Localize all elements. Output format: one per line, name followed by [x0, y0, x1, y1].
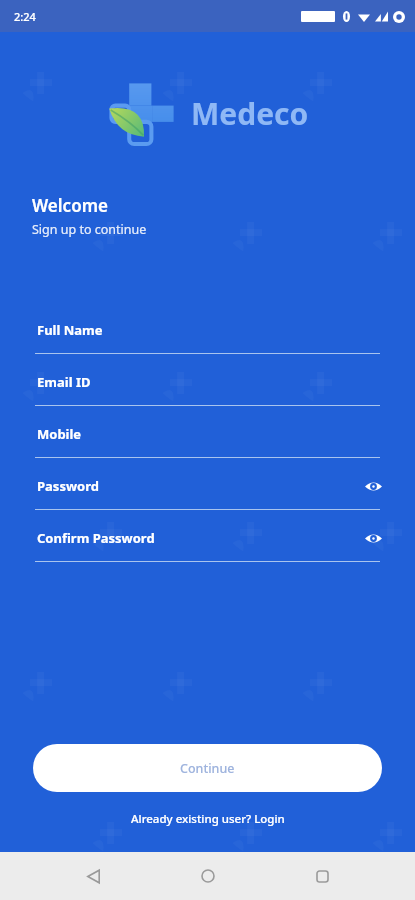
staticText: 2:24	[14, 9, 36, 24]
staticText: Password	[37, 477, 99, 495]
button[interactable]: Show password	[361, 474, 385, 498]
staticText: Welcome	[32, 194, 108, 217]
button[interactable]: Mobile	[0, 420, 415, 472]
button[interactable]: Already existing user? Login	[125, 808, 291, 830]
staticText: Sign up to continue	[32, 221, 147, 238]
staticText: Medeco	[191, 93, 309, 134]
staticText: Full Name	[37, 321, 103, 339]
button[interactable]: Home	[186, 854, 230, 898]
button[interactable]: Back	[71, 854, 115, 898]
button[interactable]: Recent apps	[300, 854, 344, 898]
button[interactable]: Full Name	[0, 316, 415, 368]
button[interactable]: Show password	[361, 526, 385, 550]
staticText: Mobile	[37, 425, 82, 443]
staticText: Already existing user? Login	[131, 811, 285, 827]
button[interactable]: Continue	[33, 744, 382, 792]
staticText: Continue	[180, 760, 235, 777]
staticText: Email ID	[37, 373, 91, 391]
staticText: Confirm Password	[37, 529, 155, 547]
button[interactable]: Email ID	[0, 368, 415, 420]
button[interactable]: Password	[0, 472, 415, 524]
button[interactable]: Confirm Password	[0, 524, 415, 576]
